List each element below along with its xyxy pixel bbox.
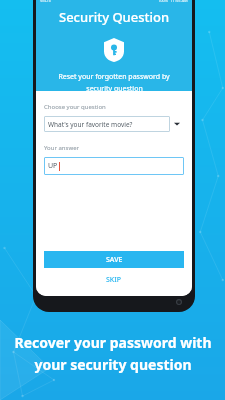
button[interactable]: SKIP — [44, 274, 184, 286]
staticText: your security question — [34, 355, 192, 374]
button[interactable]: Open question list — [170, 116, 184, 132]
button[interactable]: What's your favorite movie? — [44, 116, 170, 132]
button[interactable]: UP — [44, 157, 184, 175]
staticText: Your answer — [44, 144, 79, 152]
staticText: SKIP — [106, 275, 122, 285]
staticText: UP — [48, 161, 58, 171]
staticText: VoLTE — [40, 0, 52, 3]
staticText: Recover your password with — [14, 333, 212, 352]
staticText: Reset your forgotten password by — [58, 72, 170, 82]
button[interactable]: SAVE — [44, 251, 184, 268]
staticText: security question — [86, 84, 143, 91]
staticText: Choose your question — [44, 103, 106, 111]
staticText: 100% 11:55 AM — [158, 0, 188, 3]
staticText: SAVE — [106, 255, 123, 265]
staticText: Security Question — [59, 8, 170, 26]
staticText: What's your favorite movie? — [48, 120, 133, 129]
